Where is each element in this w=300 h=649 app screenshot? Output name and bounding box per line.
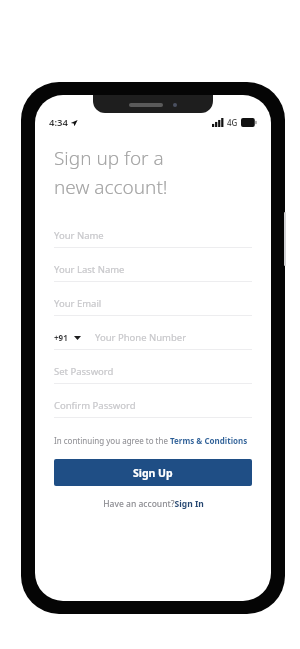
staticText: In continuing you agree to the Terms & C… <box>54 435 248 446</box>
staticText: Confirm Password <box>54 399 136 412</box>
staticText: Your Last Name <box>54 263 125 276</box>
button[interactable]: In continuing you agree to the Terms & C… <box>54 435 252 446</box>
button[interactable]: Your Email <box>54 292 252 326</box>
staticText: Have an account?Sign In <box>103 498 204 510</box>
button[interactable]: Your Last Name <box>54 258 252 292</box>
staticText: Your Email <box>54 297 102 310</box>
staticText: Sign up for a <box>54 145 164 171</box>
staticText: 4:34 <box>49 116 68 129</box>
button[interactable]: +91 <box>54 326 252 360</box>
staticText: new account! <box>54 174 168 200</box>
button[interactable]: Sign Up <box>54 459 252 486</box>
staticText: 4G <box>227 117 238 128</box>
staticText: +91 <box>54 332 68 343</box>
staticText: Sign Up <box>133 466 173 480</box>
button[interactable]: Set Password <box>54 360 252 394</box>
button[interactable]: Confirm Password <box>54 394 252 428</box>
staticText: Set Password <box>54 365 114 378</box>
button[interactable]: Your Name <box>54 224 252 258</box>
staticText: Your Phone Number <box>95 331 187 344</box>
other: Select country code <box>73 334 81 342</box>
staticText: Your Name <box>54 229 104 242</box>
button[interactable]: Have an account?Sign In <box>54 498 252 510</box>
